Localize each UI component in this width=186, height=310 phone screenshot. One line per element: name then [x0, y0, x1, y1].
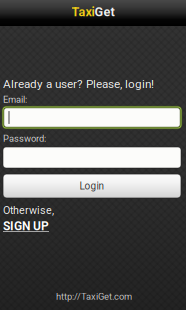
staticText: Login	[79, 180, 104, 192]
staticText: Otherwise,	[3, 204, 54, 216]
button[interactable]: SIGN UP	[3, 219, 49, 233]
button[interactable]: Login	[3, 174, 181, 198]
staticText: http://TaxiGet.com	[56, 291, 132, 302]
staticText: Already a user? Please, login!	[3, 77, 154, 91]
staticText: Taxi	[71, 5, 94, 19]
staticText: Password:	[3, 133, 46, 144]
staticText: SIGN UP	[3, 219, 49, 233]
staticText: Get	[94, 5, 114, 19]
staticText: Email:	[3, 94, 27, 105]
